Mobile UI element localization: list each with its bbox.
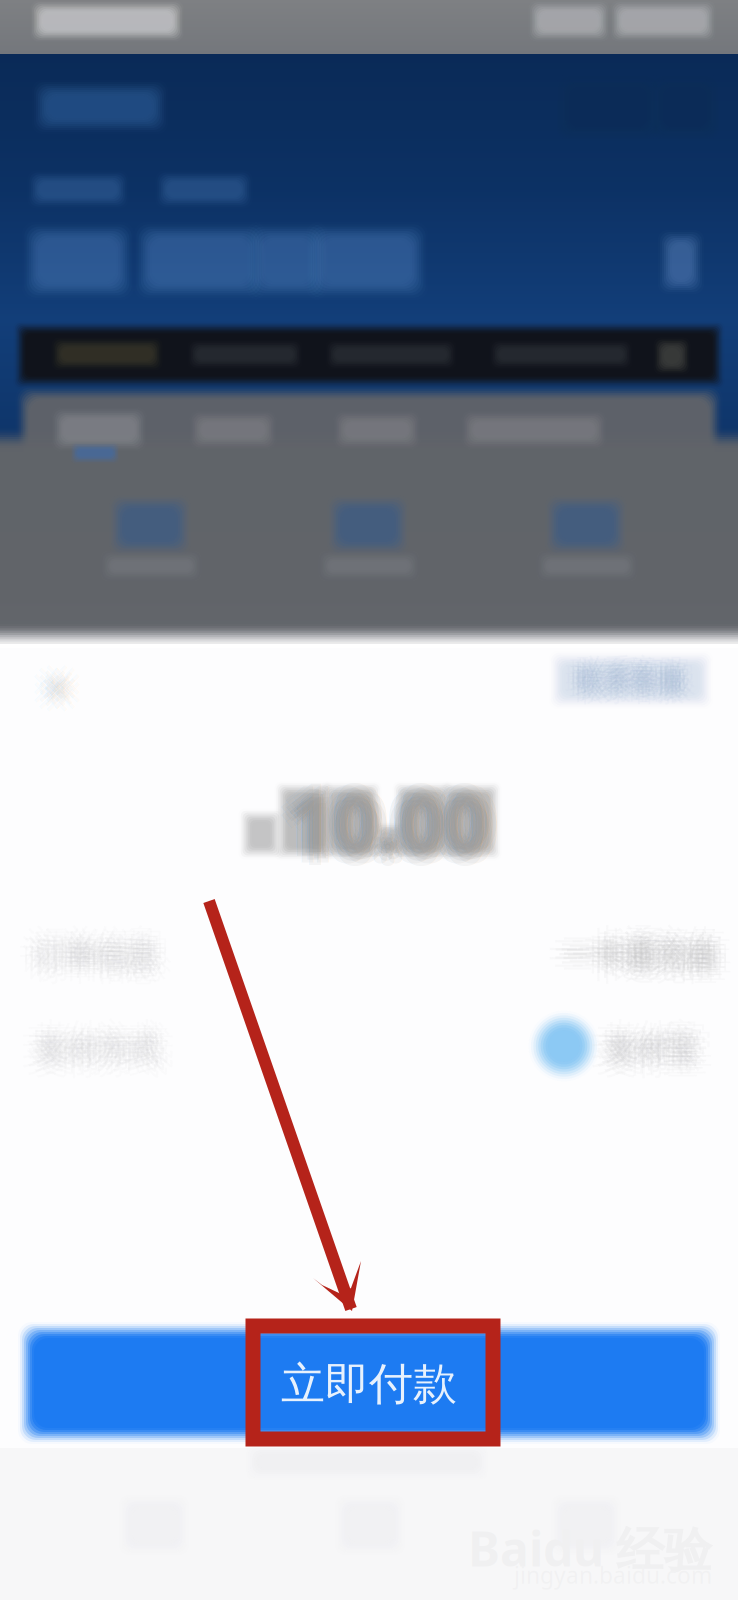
staticText: 一卡通充值	[554, 924, 709, 962]
staticText: 订单信息	[38, 938, 162, 976]
staticText: 一卡通充值	[560, 927, 715, 965]
staticText: 10.00	[297, 760, 495, 863]
staticText: 10.00	[289, 771, 487, 873]
staticText: ✕	[35, 673, 64, 712]
staticText: 一卡通充值	[566, 933, 721, 971]
staticText: 支付方式	[22, 1035, 146, 1073]
staticText: 支付方式	[36, 1030, 160, 1068]
staticText: 支付方式	[34, 1039, 158, 1077]
staticText: ✕	[45, 666, 74, 706]
staticText: ✕	[47, 663, 76, 702]
staticText: 联系客服	[570, 660, 678, 693]
staticText: 联系客服	[573, 664, 681, 697]
staticText: 联系客服	[584, 654, 692, 687]
staticText: 订单信息	[30, 937, 154, 975]
staticText: 10.00	[287, 763, 485, 865]
staticText: ✕	[50, 659, 79, 698]
staticText: 支付方式	[45, 1018, 169, 1056]
staticText: 订单信息	[43, 948, 167, 986]
button[interactable]: 立即付款	[0, 1314, 738, 1454]
staticText: 10.00	[297, 771, 495, 873]
staticText: 一卡通充值	[554, 940, 709, 978]
staticText: 订单信息	[25, 924, 149, 962]
staticText: 订单信息	[20, 941, 144, 979]
staticText: 支付方式	[34, 1021, 158, 1059]
staticText: 订单信息	[20, 932, 144, 969]
button[interactable]: 关闭	[14, 650, 100, 728]
staticText: 10.00	[297, 781, 495, 884]
staticText: 订单信息	[32, 945, 156, 983]
staticText: 10.00	[301, 767, 499, 869]
staticText: 一卡通充值	[567, 938, 722, 976]
staticText: 支付宝	[597, 1026, 690, 1064]
staticText: 支付宝	[614, 1018, 707, 1056]
staticText: 一卡通充值	[562, 936, 717, 974]
staticText: 联系客服	[588, 667, 696, 700]
staticText: 联系客服	[579, 661, 687, 694]
staticText: 联系客服	[566, 667, 674, 700]
staticText: 10.00	[277, 767, 475, 869]
staticText: 订单信息	[34, 936, 158, 974]
staticText: 一卡通充值	[563, 951, 718, 989]
staticText: 一卡通充值	[554, 932, 709, 970]
staticText: 订单信息	[32, 927, 156, 965]
staticText: 一卡通充值	[554, 948, 709, 986]
staticText: 联系客服	[584, 673, 692, 706]
staticText: 10.00	[292, 772, 490, 875]
staticText: ✕	[35, 680, 64, 719]
staticText: 支付宝	[615, 1030, 708, 1068]
staticText: 10.00	[285, 771, 483, 874]
staticText: ✕	[42, 656, 71, 696]
staticText: 10.00	[287, 767, 485, 870]
staticText: 订单信息	[33, 941, 157, 978]
staticText: 一卡通充值	[577, 931, 732, 969]
staticText: Baidu 经验	[468, 1516, 712, 1580]
staticText: 10.00	[281, 760, 479, 863]
staticText: 支付宝	[620, 1025, 713, 1063]
staticText: 支付方式	[35, 1035, 159, 1072]
staticText: 支付宝	[591, 1026, 684, 1063]
staticText: ✕	[41, 666, 70, 705]
staticText: 10.00	[282, 774, 480, 877]
staticText: 10.00	[294, 777, 492, 880]
staticText: 支付宝	[609, 1027, 702, 1065]
staticText: 联系客服	[582, 669, 690, 702]
staticText: 支付宝	[603, 1026, 696, 1064]
staticText: 订单信息	[37, 933, 161, 971]
staticText: 联系客服	[566, 660, 674, 693]
staticText: 联系客服	[575, 656, 683, 689]
button[interactable]: 支付方式	[0, 1003, 738, 1095]
staticText: 立即付款	[281, 1357, 457, 1411]
staticText: 联系客服	[576, 667, 684, 700]
staticText: 一卡通充值	[572, 936, 727, 974]
staticText: 支付宝	[606, 1045, 699, 1083]
staticText: 支付方式	[40, 1032, 164, 1070]
staticText: 支付方式	[45, 1042, 169, 1080]
staticText: 支付方式	[28, 1034, 152, 1072]
staticText: 联系客服	[575, 660, 683, 693]
staticText: 订单信息	[25, 948, 149, 986]
staticText: ✕	[46, 671, 75, 710]
staticText: 10.00	[281, 781, 479, 884]
button[interactable]: 联系客服	[546, 648, 730, 722]
staticText: 一卡通充值	[560, 932, 715, 970]
staticText: 支付宝	[603, 1021, 696, 1059]
staticText: 10.00	[292, 768, 490, 870]
button[interactable]: 订单信息	[0, 909, 738, 1001]
staticText: 支付方式	[27, 1018, 151, 1056]
staticText: ✕	[30, 665, 59, 705]
staticText: 订单信息	[40, 929, 164, 967]
staticText: 10.00	[301, 775, 499, 877]
staticText: 支付宝	[605, 1035, 698, 1072]
staticText: 订单信息	[43, 924, 167, 962]
staticText: 支付方式	[42, 1023, 166, 1061]
staticText: 10.00	[277, 775, 475, 877]
staticText: 支付方式	[34, 1026, 158, 1064]
staticText: 联系客服	[570, 654, 678, 687]
staticText: 支付方式	[27, 1042, 151, 1080]
staticText: ✕	[41, 677, 70, 716]
staticText: ✕	[35, 659, 64, 698]
staticText: 订单信息	[34, 921, 158, 959]
staticText: ✕	[47, 676, 76, 715]
